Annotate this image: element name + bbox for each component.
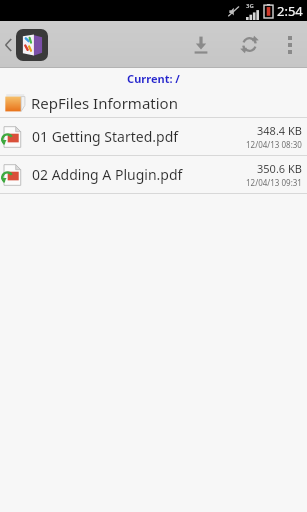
staticText: Current: / — [127, 71, 180, 86]
staticText: 2:54 — [277, 2, 303, 20]
button[interactable]: Refresh — [225, 21, 273, 68]
button[interactable]: More options — [273, 21, 307, 68]
button[interactable]: 01 Getting Started.pdf — [0, 118, 307, 155]
button[interactable]: RepFiles Information — [0, 88, 307, 117]
staticText: 350.6 KB — [257, 161, 302, 176]
button[interactable]: Download — [177, 21, 225, 68]
staticText: RepFiles Information — [31, 93, 178, 113]
staticText: 02 Adding A Plugin.pdf — [32, 165, 183, 184]
staticText: 12/04/13 09:31 — [246, 177, 302, 188]
staticText: 348.4 KB — [257, 123, 302, 138]
staticText: 01 Getting Started.pdf — [32, 127, 179, 146]
button[interactable]: 02 Adding A Plugin.pdf — [0, 156, 307, 193]
staticText: 3G — [246, 2, 254, 10]
staticText: 12/04/13 08:30 — [246, 139, 302, 150]
button[interactable]: Navigate up — [0, 29, 54, 61]
